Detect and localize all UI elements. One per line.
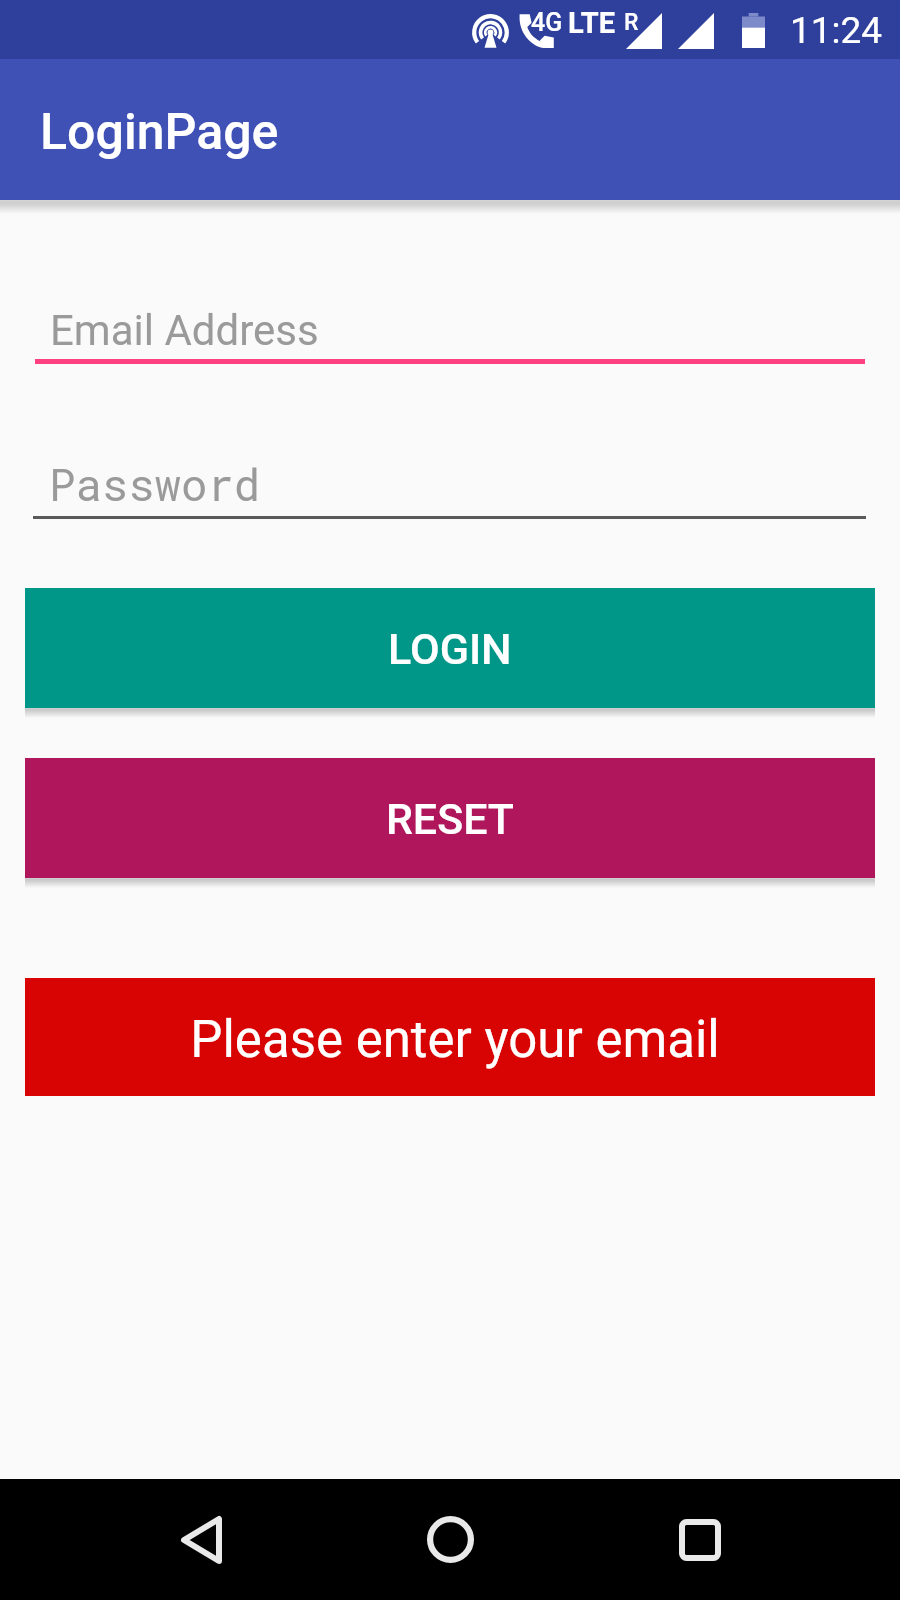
- button[interactable]: Back: [126, 1479, 276, 1600]
- staticText: Email Address: [50, 306, 319, 355]
- staticText: 4G: [531, 8, 563, 37]
- button[interactable]: LOGIN: [25, 588, 875, 708]
- button[interactable]: Password: [33, 446, 866, 519]
- staticText: 11:24: [790, 9, 883, 52]
- staticText: R: [624, 9, 639, 36]
- button[interactable]: RESET: [25, 758, 875, 878]
- staticText: RESET: [386, 794, 514, 844]
- staticText: LoginPage: [40, 103, 279, 162]
- staticText: LTE: [568, 6, 616, 40]
- button[interactable]: Home: [375, 1479, 525, 1600]
- button[interactable]: Email Address: [35, 292, 865, 364]
- staticText: LOGIN: [388, 624, 512, 674]
- button[interactable]: Recent apps: [625, 1479, 775, 1600]
- staticText: Password: [49, 455, 261, 513]
- staticText: Please enter your email: [190, 1010, 720, 1070]
